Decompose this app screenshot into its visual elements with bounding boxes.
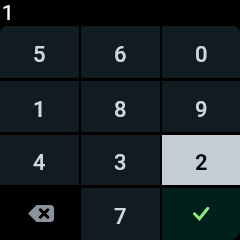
staticText: 8 <box>114 97 127 123</box>
button[interactable]: 5 <box>0 26 79 78</box>
button[interactable]: 4 <box>0 135 79 185</box>
button[interactable]: 1 <box>0 81 79 132</box>
button[interactable]: 0 <box>162 26 240 78</box>
staticText: 6 <box>114 42 127 68</box>
staticText: 9 <box>195 97 208 123</box>
staticText: 2 <box>195 150 208 176</box>
button[interactable]: Backspace <box>0 188 79 240</box>
button[interactable]: 2 <box>162 135 240 185</box>
staticText: 7 <box>114 204 127 230</box>
button[interactable]: 3 <box>81 135 160 185</box>
button[interactable]: 6 <box>81 26 160 78</box>
staticText: 5 <box>33 42 46 68</box>
button[interactable]: 9 <box>162 81 240 132</box>
button[interactable]: Confirm <box>162 188 240 240</box>
button[interactable]: 8 <box>81 81 160 132</box>
staticText: 0 <box>195 42 208 68</box>
button[interactable]: 7 <box>81 188 160 240</box>
staticText: 1 <box>33 97 46 123</box>
staticText: 3 <box>114 150 127 176</box>
staticText: 1 <box>2 1 14 26</box>
staticText: 4 <box>33 150 46 176</box>
